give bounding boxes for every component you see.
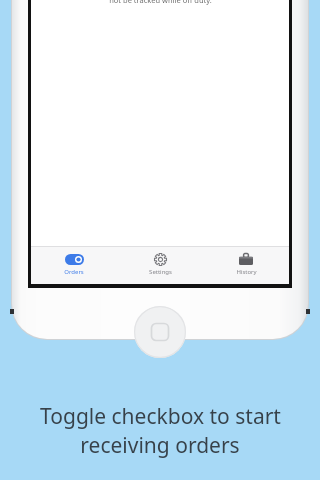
staticText: Orders <box>64 268 84 276</box>
staticText: Toggle checkbox to start <box>40 402 281 431</box>
staticText: receiving orders <box>80 431 240 460</box>
staticText: Settings <box>149 268 172 276</box>
button[interactable]: Settings <box>117 247 203 284</box>
button[interactable]: History <box>203 247 289 284</box>
staticText: History <box>236 268 257 276</box>
button[interactable]: Home <box>134 306 186 358</box>
button[interactable]: Orders <box>31 247 117 284</box>
staticText: not be tracked while off duty. <box>109 0 212 5</box>
